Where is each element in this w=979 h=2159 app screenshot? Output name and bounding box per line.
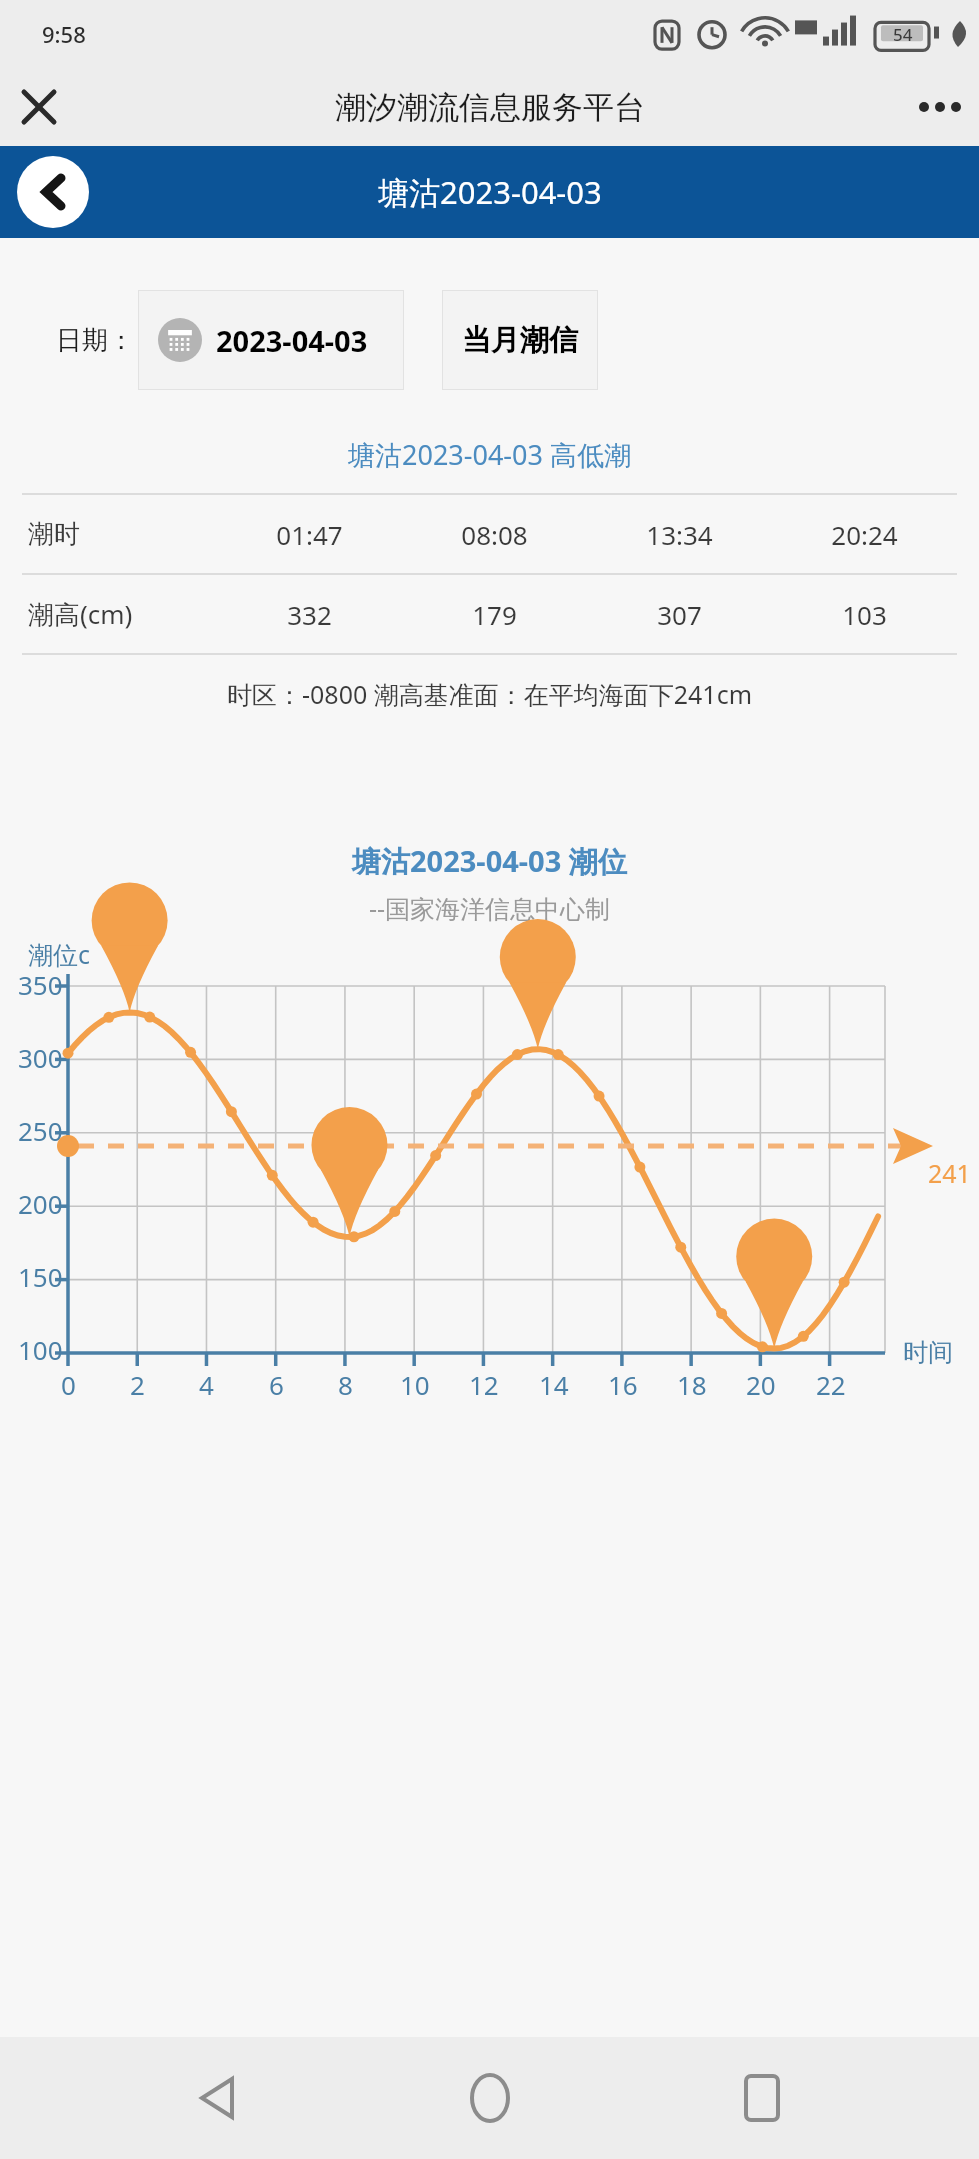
staticText: 2	[130, 1367, 145, 1402]
staticText: 潮高(cm)	[28, 596, 133, 632]
staticText: 13:34	[646, 517, 713, 552]
button[interactable]: Close	[0, 68, 78, 146]
staticText: 241	[928, 1156, 971, 1190]
staticText: 当月潮信	[462, 322, 578, 359]
staticText: 300	[18, 1040, 63, 1075]
staticText: 103	[842, 597, 887, 632]
staticText: 潮位c	[28, 937, 91, 971]
staticText: 塘沽2023-04-03 潮位	[352, 841, 627, 881]
staticText: 时区：-0800 潮高基准面：在平均海面下241cm	[227, 677, 753, 711]
staticText: 100	[18, 1332, 63, 1367]
staticText: 20:24	[831, 517, 898, 552]
staticText: 18	[677, 1367, 707, 1402]
button[interactable]: Recent apps	[707, 2043, 817, 2153]
staticText: 14	[539, 1367, 569, 1402]
staticText: 200	[18, 1186, 63, 1221]
staticText: --国家海洋信息中心制	[369, 891, 611, 925]
staticText: 2023-04-03	[216, 321, 368, 360]
staticText: 01:47	[276, 517, 343, 552]
staticText: 潮时	[28, 518, 80, 551]
staticText: 塘沽2023-04-03 高低潮	[348, 436, 631, 473]
staticText: 12	[469, 1367, 499, 1402]
button[interactable]: Back	[162, 2043, 272, 2153]
staticText: 6	[269, 1367, 284, 1402]
staticText: 54	[893, 23, 913, 46]
staticText: 250	[18, 1113, 63, 1148]
staticText: 20	[746, 1367, 776, 1402]
staticText: 0	[61, 1367, 76, 1402]
staticText: 塘沽2023-04-03	[378, 171, 602, 213]
staticText: 4	[199, 1367, 214, 1402]
staticText: 08:08	[461, 517, 528, 552]
staticText: 332	[287, 597, 332, 632]
staticText: 时间	[903, 1337, 953, 1368]
staticText: 日期：	[56, 324, 134, 357]
button[interactable]: 当月潮信	[442, 290, 598, 390]
staticText: 150	[18, 1259, 63, 1294]
button[interactable]: Back	[17, 156, 89, 228]
staticText: 8	[338, 1367, 353, 1402]
staticText: 22	[816, 1367, 846, 1402]
staticText: 307	[657, 597, 702, 632]
button[interactable]: 2023-04-03	[138, 290, 404, 390]
staticText: 潮汐潮流信息服务平台	[335, 88, 645, 127]
staticText: 179	[472, 597, 517, 632]
staticText: 9:58	[42, 19, 86, 49]
staticText: 350	[18, 967, 63, 1002]
staticText: 16	[608, 1367, 638, 1402]
staticText: 10	[400, 1367, 430, 1402]
button[interactable]: Home	[435, 2043, 545, 2153]
button[interactable]: More options	[901, 68, 979, 146]
